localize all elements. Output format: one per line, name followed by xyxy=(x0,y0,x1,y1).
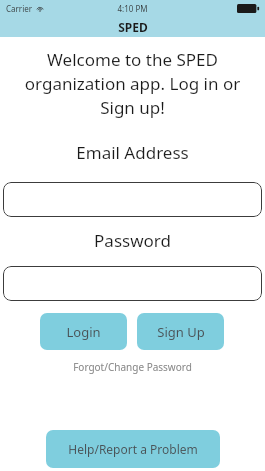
staticText: SPED xyxy=(118,19,148,35)
staticText: 4:10 PM xyxy=(117,3,148,14)
staticText: Password xyxy=(0,229,265,252)
staticText: Email Address xyxy=(0,141,265,164)
staticText: Sign Up xyxy=(157,323,205,341)
button[interactable]: Forgot/Change Password xyxy=(0,358,265,376)
staticText: Carrier xyxy=(6,3,33,14)
button[interactable]: Sign Up xyxy=(137,313,224,350)
button[interactable]: Help/Report a Problem xyxy=(46,430,220,468)
staticText: Help/Report a Problem xyxy=(68,441,198,457)
button[interactable]: Login xyxy=(40,313,127,350)
staticText: Forgot/Change Password xyxy=(73,360,192,374)
staticText: Welcome to the SPED organization app. Lo… xyxy=(18,48,247,119)
button[interactable] xyxy=(3,182,262,217)
staticText: Login xyxy=(66,323,101,341)
button[interactable] xyxy=(3,266,262,301)
